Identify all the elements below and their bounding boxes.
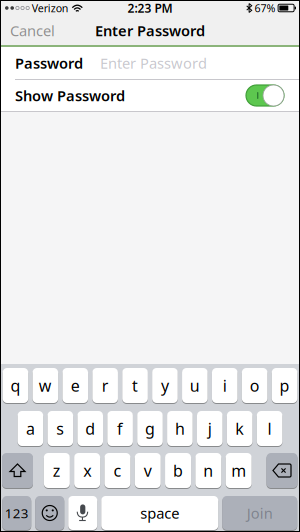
staticText: Verizon: [32, 1, 69, 15]
button[interactable]: Emoji: [35, 496, 64, 530]
button[interactable]: c: [104, 453, 130, 488]
staticText: a: [26, 418, 35, 439]
button[interactable]: o: [242, 368, 267, 403]
staticText: s: [56, 418, 64, 439]
button[interactable]: g: [137, 411, 163, 446]
button[interactable]: r: [92, 368, 118, 403]
staticText: b: [173, 460, 183, 481]
button[interactable]: u: [182, 368, 208, 403]
button[interactable]: d: [77, 411, 103, 446]
staticText: Enter Password: [100, 53, 207, 73]
button[interactable]: Show Password: [246, 85, 284, 106]
button[interactable]: e: [62, 368, 88, 403]
button[interactable]: x: [74, 453, 100, 488]
staticText: k: [235, 418, 244, 439]
staticText: m: [231, 460, 246, 481]
staticText: x: [83, 460, 91, 481]
staticText: t: [132, 375, 138, 396]
button[interactable]: v: [135, 453, 161, 488]
button[interactable]: l: [257, 411, 282, 446]
staticText: p: [280, 375, 290, 396]
button[interactable]: b: [165, 453, 191, 488]
staticText: j: [208, 418, 212, 439]
button[interactable]: Join: [222, 496, 297, 530]
staticText: 2:23 PM: [127, 0, 172, 16]
staticText: 67%: [255, 1, 276, 15]
staticText: f: [117, 418, 123, 439]
staticText: Cancel: [10, 21, 55, 40]
button[interactable]: h: [167, 411, 193, 446]
staticText: z: [53, 460, 61, 481]
staticText: l: [268, 418, 272, 439]
button[interactable]: m: [226, 453, 252, 488]
staticText: h: [175, 418, 185, 439]
button[interactable]: q: [3, 368, 28, 403]
staticText: y: [161, 375, 169, 396]
button[interactable]: t: [122, 368, 148, 403]
button[interactable]: j: [197, 411, 223, 446]
button[interactable]: Cancel: [0, 21, 55, 40]
staticText: n: [203, 460, 213, 481]
button[interactable]: Numbers: [2, 496, 31, 530]
staticText: Join: [247, 503, 273, 523]
button[interactable]: Dictation: [68, 496, 97, 530]
button[interactable]: k: [227, 411, 252, 446]
button[interactable]: n: [195, 453, 221, 488]
staticText: q: [10, 375, 20, 396]
staticText: o: [250, 375, 260, 396]
staticText: d: [85, 418, 95, 439]
button[interactable]: s: [47, 411, 73, 446]
button[interactable]: Delete: [266, 453, 297, 488]
staticText: c: [113, 460, 121, 481]
button[interactable]: w: [33, 368, 58, 403]
staticText: i: [223, 375, 227, 396]
staticText: Enter Password: [95, 21, 205, 40]
button[interactable]: z: [44, 453, 70, 488]
staticText: r: [102, 375, 109, 396]
staticText: e: [71, 375, 80, 396]
button[interactable]: Shift: [2, 453, 33, 488]
staticText: Show Password: [15, 86, 125, 105]
button[interactable]: Password: [100, 47, 300, 79]
button[interactable]: p: [272, 368, 297, 403]
button[interactable]: a: [18, 411, 43, 446]
button[interactable]: i: [212, 368, 238, 403]
button[interactable]: y: [152, 368, 178, 403]
staticText: Password: [15, 53, 83, 73]
staticText: 123: [5, 504, 29, 522]
staticText: space: [140, 503, 179, 523]
button[interactable]: f: [107, 411, 133, 446]
staticText: u: [190, 375, 200, 396]
staticText: g: [145, 418, 155, 439]
staticText: w: [39, 375, 52, 396]
staticText: v: [144, 460, 152, 481]
button[interactable]: space: [101, 496, 218, 530]
